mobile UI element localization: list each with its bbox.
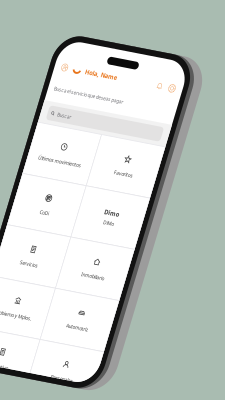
staticText: Automotriz [109, 284, 136, 292]
button[interactable]: Educativo [6, 307, 83, 360]
button[interactable]: Últimos movimientos [6, 93, 83, 146]
button[interactable]: Automotriz [83, 253, 161, 307]
button[interactable]: Gobierno y Mplos. [6, 253, 83, 307]
staticText: Gobierno y Mplos. [23, 284, 66, 292]
staticText: Hola, Name [43, 30, 82, 38]
staticText: CoDi [39, 177, 50, 185]
button[interactable]: Dimo [83, 146, 161, 200]
staticText: DiMo [116, 175, 129, 182]
staticText: Servicios [34, 231, 56, 238]
button[interactable]: Personales [83, 307, 161, 360]
staticText: Personales [109, 338, 136, 345]
button[interactable]: Servicios [6, 200, 83, 253]
button[interactable]: CoDi [6, 146, 83, 200]
staticText: Dimo [113, 164, 131, 173]
button[interactable]: Inmobiliario [83, 200, 161, 253]
staticText: Busca el servicio que deseas pagar [13, 53, 97, 60]
staticText: Educativo [33, 338, 57, 345]
button[interactable]: Buscar [14, 74, 153, 89]
staticText: Últimos movimientos [19, 124, 71, 131]
button[interactable]: Favoritos [83, 93, 161, 146]
